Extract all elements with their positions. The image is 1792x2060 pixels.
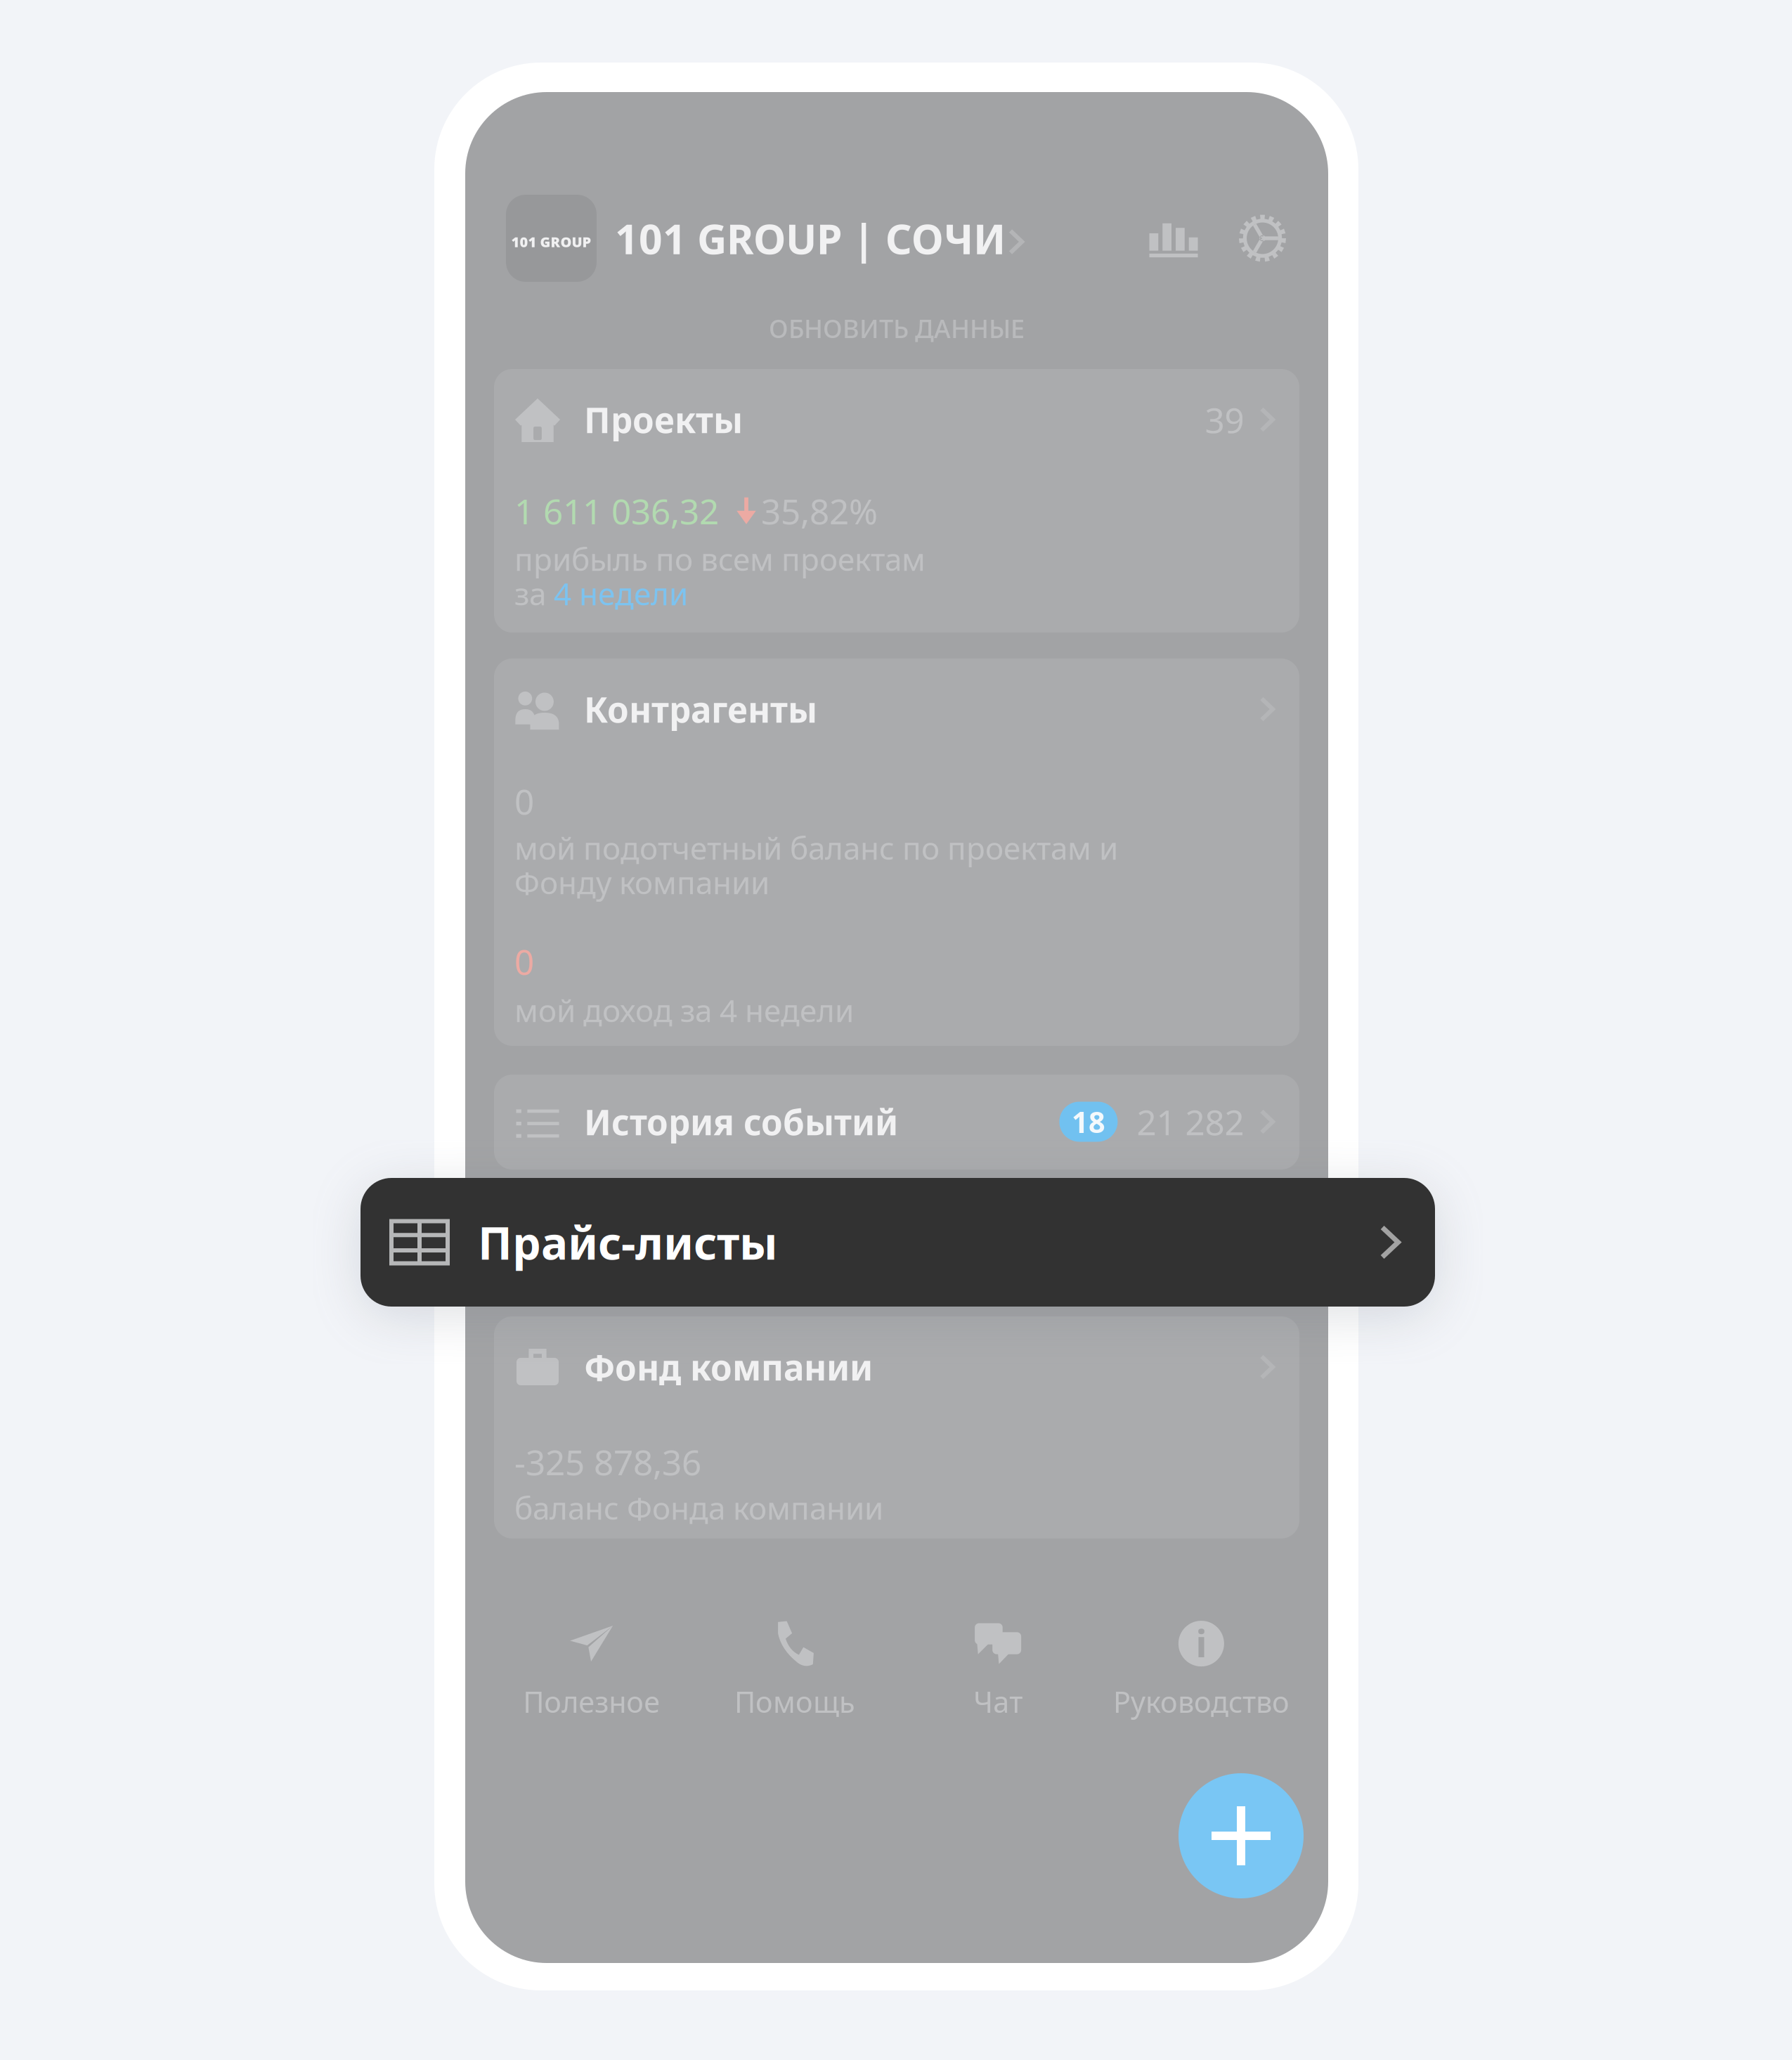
staticText: Чат xyxy=(973,1682,1023,1721)
staticText: 101 GROUP xyxy=(511,232,591,251)
button[interactable]: Add xyxy=(1179,1773,1304,1898)
staticText: 18 xyxy=(1072,1102,1105,1141)
staticText: Помощь xyxy=(734,1682,855,1721)
staticText: Руководство xyxy=(1113,1682,1289,1721)
staticText: 21 282 xyxy=(1137,1099,1244,1145)
staticText: Прайс-листы xyxy=(478,1212,778,1272)
staticText: 0 xyxy=(514,938,534,984)
button[interactable]: Помощь xyxy=(693,1621,896,1720)
button[interactable]: Контрагенты xyxy=(494,659,1299,1046)
button[interactable]: Проекты xyxy=(494,369,1299,633)
button[interactable]: Settings xyxy=(1219,195,1306,282)
staticText: Полезное xyxy=(523,1682,660,1721)
button[interactable]: Прайс-листы xyxy=(361,1178,1435,1307)
staticText: баланс Фонда компании xyxy=(514,1487,883,1528)
button[interactable]: История событий xyxy=(494,1075,1299,1170)
button[interactable]: Чат xyxy=(896,1621,1100,1720)
button[interactable]: ОБНОВИТЬ ДАННЫЕ xyxy=(465,303,1328,354)
staticText: мой доход за 4 недели xyxy=(514,990,854,1031)
button[interactable]: i xyxy=(1100,1621,1303,1720)
staticText: ОБНОВИТЬ ДАННЫЕ xyxy=(769,311,1025,345)
staticText: Фонд компании xyxy=(584,1344,873,1390)
staticText: 39 xyxy=(1205,397,1244,443)
button[interactable]: Фонд компании xyxy=(494,1316,1299,1538)
staticText: прибыль по всем проектам xyxy=(514,538,926,579)
staticText: Проекты xyxy=(584,397,743,443)
staticText: за xyxy=(514,573,554,614)
staticText: 4 недели xyxy=(554,573,688,614)
button[interactable]: Полезное xyxy=(490,1621,693,1720)
staticText: История событий xyxy=(584,1099,898,1145)
button[interactable]: Statistics xyxy=(1129,195,1219,282)
button[interactable]: 101 GROUP xyxy=(506,195,1024,282)
staticText: 0 xyxy=(514,778,534,824)
staticText: i xyxy=(1196,1618,1207,1668)
staticText: -325 878,36 xyxy=(514,1439,701,1485)
staticText: 101 GROUP | СОЧИ xyxy=(615,211,1006,266)
staticText: Фонду компании xyxy=(514,862,770,903)
staticText: 35,82% xyxy=(761,488,878,534)
staticText: Контрагенты xyxy=(584,686,817,732)
staticText: 1 611 036,32 xyxy=(514,488,719,534)
staticText: мой подотчетный баланс по проектам и xyxy=(514,827,1118,868)
